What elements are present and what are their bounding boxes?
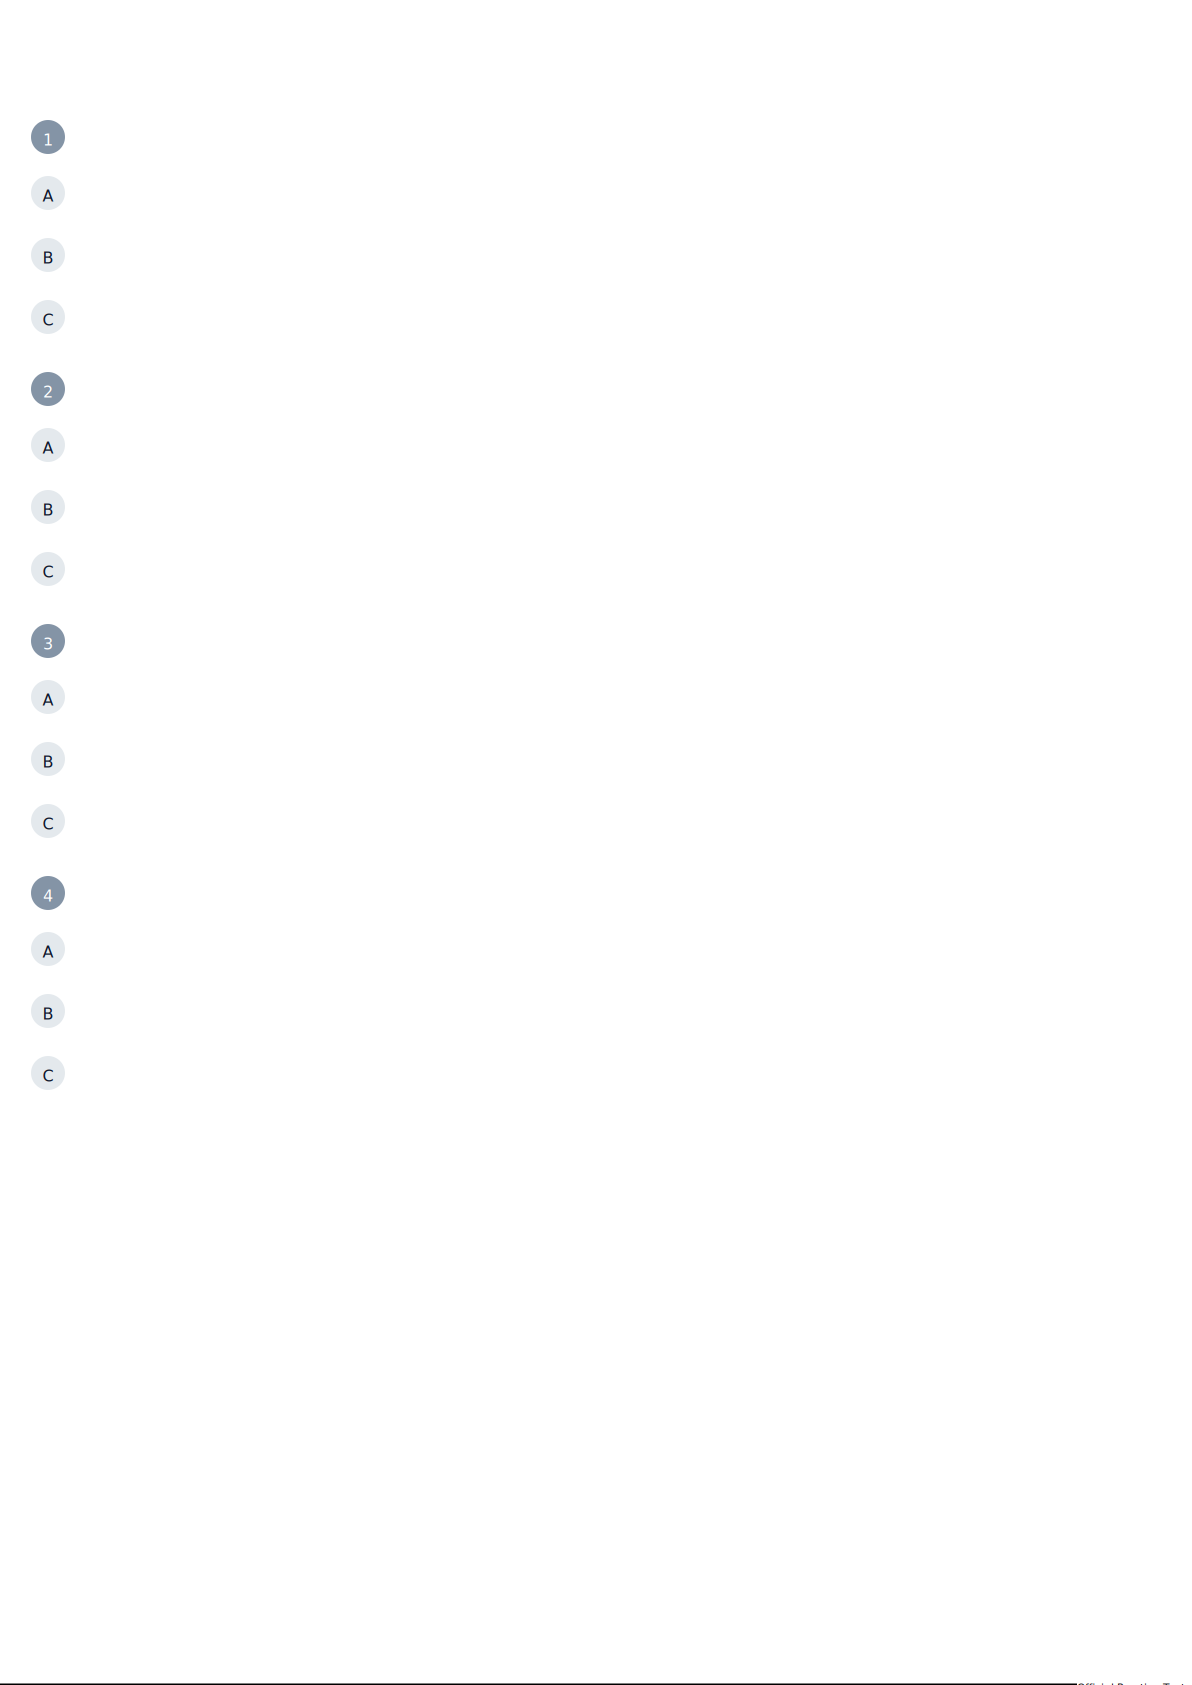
button[interactable]: Question 4, option B	[31, 980, 65, 1042]
button[interactable]: Question 4, option C	[31, 1042, 65, 1104]
button[interactable]: Question 4	[31, 868, 65, 918]
staticText: B	[42, 501, 53, 519]
staticText: A	[42, 943, 53, 961]
button[interactable]: Question 2, option A	[31, 414, 65, 476]
staticText: C	[42, 1067, 53, 1085]
button[interactable]: Question 1, option A	[31, 162, 65, 224]
staticText: C	[42, 815, 53, 833]
staticText: B	[42, 249, 53, 267]
button[interactable]: Question 1, option C	[31, 286, 65, 348]
staticText: B	[42, 753, 53, 771]
button[interactable]: Question 2, option C	[31, 538, 65, 600]
staticText: A	[42, 439, 53, 457]
staticText: C	[42, 563, 53, 581]
staticText: Official Practice Test · Part B	[1077, 1681, 1192, 1685]
staticText: A	[42, 187, 53, 205]
staticText: B	[42, 1005, 53, 1023]
button[interactable]: Question 3, option B	[31, 728, 65, 790]
button[interactable]: Question 2	[31, 364, 65, 414]
staticText: 4	[43, 887, 53, 905]
staticText: 2	[43, 383, 53, 401]
staticText: 1	[43, 131, 53, 149]
button[interactable]: Question 1, option B	[31, 224, 65, 286]
staticText: C	[42, 311, 53, 329]
staticText: 3	[43, 635, 53, 653]
button[interactable]: Question 1	[31, 112, 65, 162]
staticText: A	[42, 691, 53, 709]
button[interactable]: Question 3, option C	[31, 790, 65, 852]
button[interactable]: Question 3, option A	[31, 666, 65, 728]
button[interactable]: Question 2, option B	[31, 476, 65, 538]
button[interactable]: Question 4, option A	[31, 918, 65, 980]
button[interactable]: Question 3	[31, 616, 65, 666]
